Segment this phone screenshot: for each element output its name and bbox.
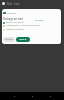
staticText: Tracking 8842 · carrier update sent [6,24,41,27]
staticText: Mail · now [7,2,20,6]
staticText: Signature needed [6,28,24,31]
staticText: Left at front porch [6,21,24,24]
button[interactable]: Mail · now [2,2,64,8]
button[interactable]: Home [28,92,36,100]
staticText: Dismiss [5,38,13,41]
button[interactable]: Track it [16,37,30,42]
button[interactable]: Shipping [2,9,61,44]
staticText: On time [35,19,44,22]
button[interactable]: Dismiss [3,37,15,42]
staticText: Package arrived [3,17,23,21]
button[interactable]: Recent apps [46,92,54,100]
button[interactable]: Back [10,92,18,100]
staticText: Shipping [7,12,17,15]
staticText: Track it [19,38,27,41]
